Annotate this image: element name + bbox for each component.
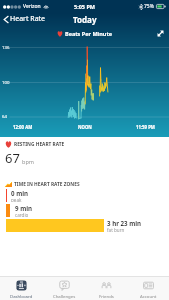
staticText: Account — [140, 293, 157, 299]
staticText: 100 — [2, 79, 10, 85]
staticText: TIME IN HEART RATE ZONES — [14, 181, 80, 188]
staticText: 3 hr 23 min — [107, 219, 142, 227]
staticText: Dashboard — [10, 293, 33, 299]
button[interactable]: 0 min — [0, 189, 169, 202]
staticText: 67 — [5, 149, 20, 167]
staticText: 0 min — [11, 189, 29, 197]
staticText: 64 — [2, 113, 7, 119]
staticText: 75% — [144, 3, 154, 10]
staticText: Heart Rate — [10, 14, 46, 24]
staticText: Friends — [99, 293, 114, 299]
staticText: 136 — [2, 44, 10, 50]
staticText: 11:59 PM — [136, 124, 155, 130]
staticText: Challenges — [53, 293, 76, 299]
button[interactable]: Challenges — [43, 277, 85, 300]
staticText: 5:05 PM — [74, 3, 96, 10]
button[interactable]: Heart Rate — [0, 12, 50, 26]
staticText: 9 min — [15, 204, 33, 212]
button[interactable]: Friends — [85, 277, 127, 300]
staticText: Today — [73, 14, 97, 25]
staticText: cardio — [15, 212, 29, 217]
staticText: 12:00 AM — [13, 124, 33, 130]
button[interactable]: 9 min — [0, 204, 169, 217]
staticText: NOON — [78, 124, 92, 130]
staticText: Beats Per Minute — [65, 30, 113, 37]
staticText: peak — [11, 197, 22, 202]
staticText: fat burn — [107, 227, 125, 232]
button[interactable]: Account — [127, 277, 169, 300]
button[interactable]: Expand chart — [155, 28, 166, 39]
button[interactable]: Dashboard — [0, 277, 43, 300]
button[interactable]: 3 hr 23 min — [0, 219, 169, 232]
staticText: Verizon — [23, 3, 41, 10]
button[interactable]: RESTING HEART RATE — [0, 140, 169, 168]
staticText: bpm — [22, 158, 34, 165]
staticText: RESTING HEART RATE — [14, 141, 65, 148]
